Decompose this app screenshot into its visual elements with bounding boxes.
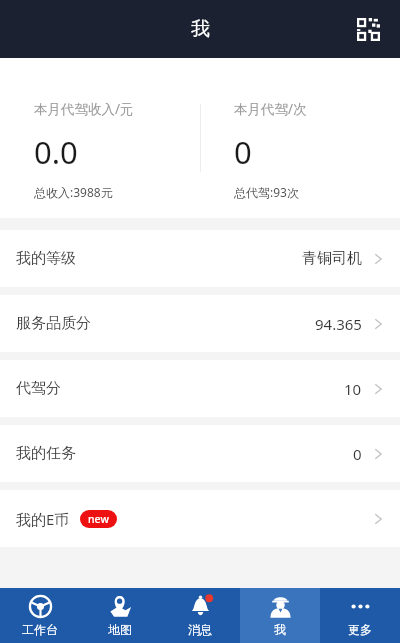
staticText: 总收入:3988元: [34, 184, 113, 200]
staticText: 本月代驾/次: [234, 100, 307, 118]
staticText: 94.365: [315, 314, 362, 334]
staticText: 0: [353, 444, 362, 464]
button[interactable]: 消息: [160, 588, 240, 643]
button[interactable]: 地图: [80, 588, 160, 643]
staticText: 我: [191, 17, 210, 41]
button[interactable]: Scan QR code: [346, 7, 390, 51]
button[interactable]: 工作台: [0, 588, 80, 643]
staticText: 0: [234, 131, 252, 173]
staticText: 总代驾:93次: [234, 184, 299, 200]
staticText: 消息: [188, 622, 212, 637]
staticText: 我的等级: [16, 249, 76, 268]
staticText: new: [88, 512, 109, 526]
button[interactable]: 服务品质分: [0, 295, 400, 352]
button[interactable]: 我的E币: [0, 490, 400, 547]
button[interactable]: 我: [240, 588, 320, 643]
button[interactable]: 代驾分: [0, 360, 400, 417]
staticText: 0.0: [34, 131, 78, 173]
button[interactable]: 我的等级: [0, 230, 400, 287]
button[interactable]: 我的任务: [0, 425, 400, 482]
staticText: 更多: [348, 622, 372, 637]
button[interactable]: 本月代驾收入/元: [0, 58, 200, 218]
staticText: 代驾分: [16, 379, 61, 398]
staticText: 我的任务: [16, 444, 76, 463]
staticText: 地图: [108, 622, 132, 637]
staticText: 青铜司机: [302, 249, 362, 268]
button[interactable]: 更多: [320, 588, 400, 643]
button[interactable]: 本月代驾/次: [200, 58, 400, 218]
staticText: 服务品质分: [16, 314, 91, 333]
staticText: 我的E币: [16, 509, 70, 529]
staticText: 工作台: [22, 622, 58, 637]
staticText: 我: [274, 622, 286, 637]
staticText: 本月代驾收入/元: [34, 100, 134, 118]
staticText: 10: [344, 379, 362, 399]
